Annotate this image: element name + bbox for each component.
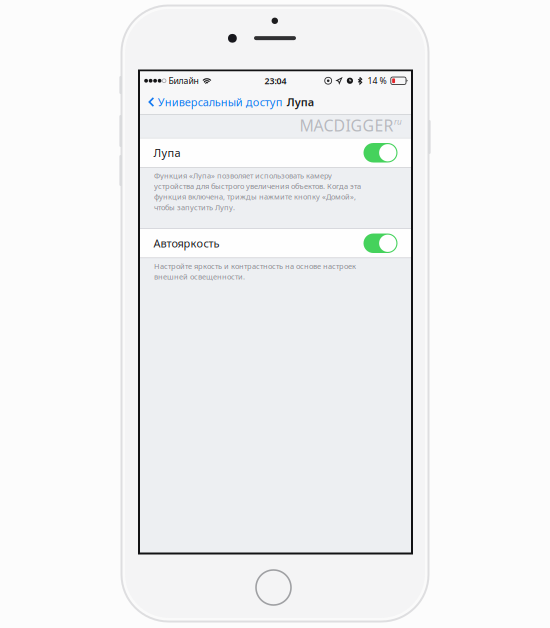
button[interactable]: Универсальный доступ	[140, 90, 287, 114]
staticText: 23:04	[264, 75, 286, 87]
staticText: Универсальный доступ	[158, 94, 283, 109]
staticText: MACDIGGER	[299, 115, 393, 136]
button[interactable]: Лупа	[140, 138, 411, 167]
staticText: 14 %	[367, 75, 386, 87]
button[interactable]: Автояркость	[140, 229, 411, 257]
staticText: Функция «Лупа» позволяет использовать ка…	[154, 170, 361, 212]
staticText: Лупа	[154, 145, 181, 160]
staticText: Билайн	[169, 75, 199, 87]
staticText: ru	[394, 116, 402, 127]
staticText: Лупа	[287, 94, 314, 109]
staticText: Настройте яркость и контрастность на осн…	[154, 261, 356, 282]
staticText: Автояркость	[154, 236, 220, 251]
